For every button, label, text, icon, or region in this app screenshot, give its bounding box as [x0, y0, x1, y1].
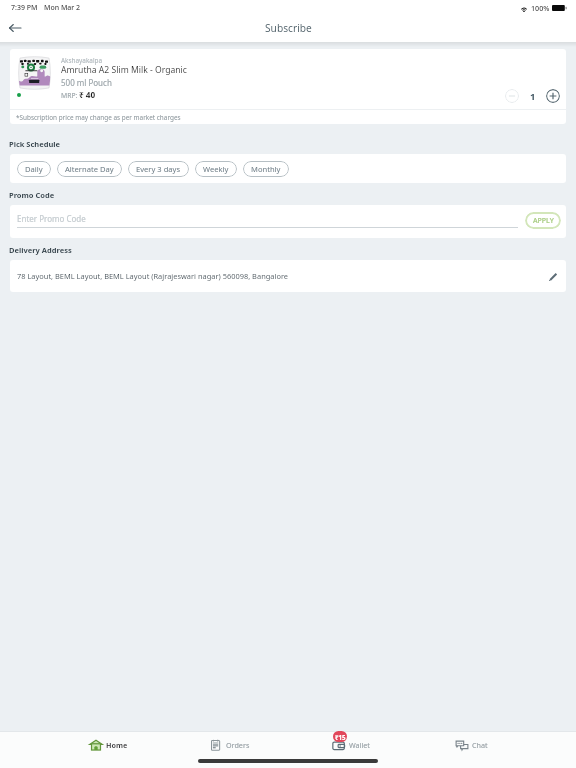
staticText: APPLY [533, 216, 554, 226]
staticText: Every 3 days [136, 164, 181, 174]
staticText: Weekly [203, 164, 229, 174]
button[interactable]: Every 3 days [128, 161, 189, 177]
button[interactable]: Monthly [243, 161, 289, 177]
staticText: Akshayakalpa [61, 56, 103, 65]
staticText: Alternate Day [65, 164, 114, 174]
staticText: Promo Code [9, 190, 55, 200]
button[interactable]: Back [4, 17, 26, 39]
staticText: Delivery Address [9, 245, 72, 255]
staticText: 1 [530, 90, 536, 103]
staticText: Amrutha A2 Slim Milk - Organic [61, 64, 187, 76]
staticText: 500 ml Pouch [61, 77, 112, 88]
staticText: 7:39 PM [11, 3, 38, 13]
staticText: Daily [25, 164, 43, 174]
staticText: ₹ 40 [79, 89, 96, 100]
button[interactable]: ₹15 [290, 733, 411, 757]
staticText: Chat [472, 740, 488, 750]
staticText: MRP: [61, 91, 78, 100]
staticText: Pick Schedule [9, 139, 61, 149]
staticText: ₹15 [335, 733, 346, 741]
staticText: Mon Mar 2 [44, 3, 81, 13]
staticText: Wallet [349, 740, 370, 750]
button[interactable]: Alternate Day [57, 161, 122, 177]
staticText: *Subscription price may change as per ma… [16, 113, 181, 122]
staticText: Home [106, 740, 128, 750]
staticText: Monthly [251, 164, 281, 174]
button[interactable]: APPLY [525, 212, 561, 229]
button[interactable]: Home [48, 733, 169, 757]
staticText: 100% [531, 3, 550, 13]
staticText: Enter Promo Code [17, 213, 86, 224]
staticText: Subscribe [265, 21, 312, 35]
button[interactable]: Daily [17, 161, 51, 177]
button[interactable]: Increase quantity [546, 89, 560, 103]
button[interactable]: Edit address [545, 269, 560, 284]
staticText: 78 Layout, BEML Layout, BEML Layout (Raj… [17, 271, 289, 281]
staticText: Orders [226, 740, 250, 750]
button[interactable]: Orders [169, 733, 290, 757]
button[interactable]: Weekly [195, 161, 237, 177]
button[interactable]: Chat [411, 733, 532, 757]
button[interactable]: Decrease quantity [505, 89, 519, 103]
